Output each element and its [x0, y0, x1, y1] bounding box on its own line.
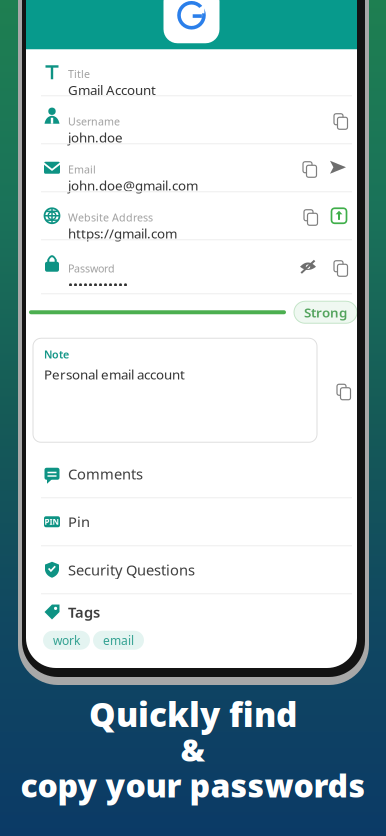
button[interactable]: Password: [26, 240, 357, 293]
staticText: PIN: [44, 516, 59, 527]
staticText: Password: [68, 261, 115, 275]
staticText: Email: [68, 162, 96, 176]
button[interactable]: Website Address: [26, 192, 357, 239]
staticText: Username: [68, 114, 120, 128]
staticText: Tags: [68, 602, 100, 622]
staticText: Pin: [68, 512, 90, 531]
staticText: &: [180, 729, 205, 770]
staticText: Personal email account: [44, 365, 185, 383]
staticText: email: [103, 632, 134, 648]
button[interactable]: Email: [26, 144, 357, 191]
button[interactable]: PIN: [26, 498, 357, 545]
button[interactable]: email: [93, 631, 144, 650]
button[interactable]: Username: [26, 96, 357, 143]
staticText: Note: [44, 347, 69, 361]
staticText: ••••••••••••: [68, 275, 128, 293]
staticText: https://gmail.com: [68, 224, 177, 242]
staticText: Title: [68, 67, 90, 81]
staticText: john.doe: [68, 128, 123, 146]
button[interactable]: Comments: [26, 450, 357, 497]
staticText: copy your passwords: [20, 764, 365, 806]
button[interactable]: Security Questions: [26, 546, 357, 593]
staticText: john.doe@gmail.com: [68, 176, 198, 194]
button[interactable]: work: [43, 631, 90, 650]
staticText: Security Questions: [68, 560, 195, 579]
button[interactable]: Title: [26, 49, 357, 95]
staticText: work: [53, 632, 80, 648]
staticText: Website Address: [68, 210, 153, 224]
staticText: Gmail Account: [68, 81, 156, 99]
staticText: Comments: [68, 464, 143, 483]
staticText: Quickly find: [89, 692, 297, 736]
staticText: Strong: [304, 303, 347, 321]
